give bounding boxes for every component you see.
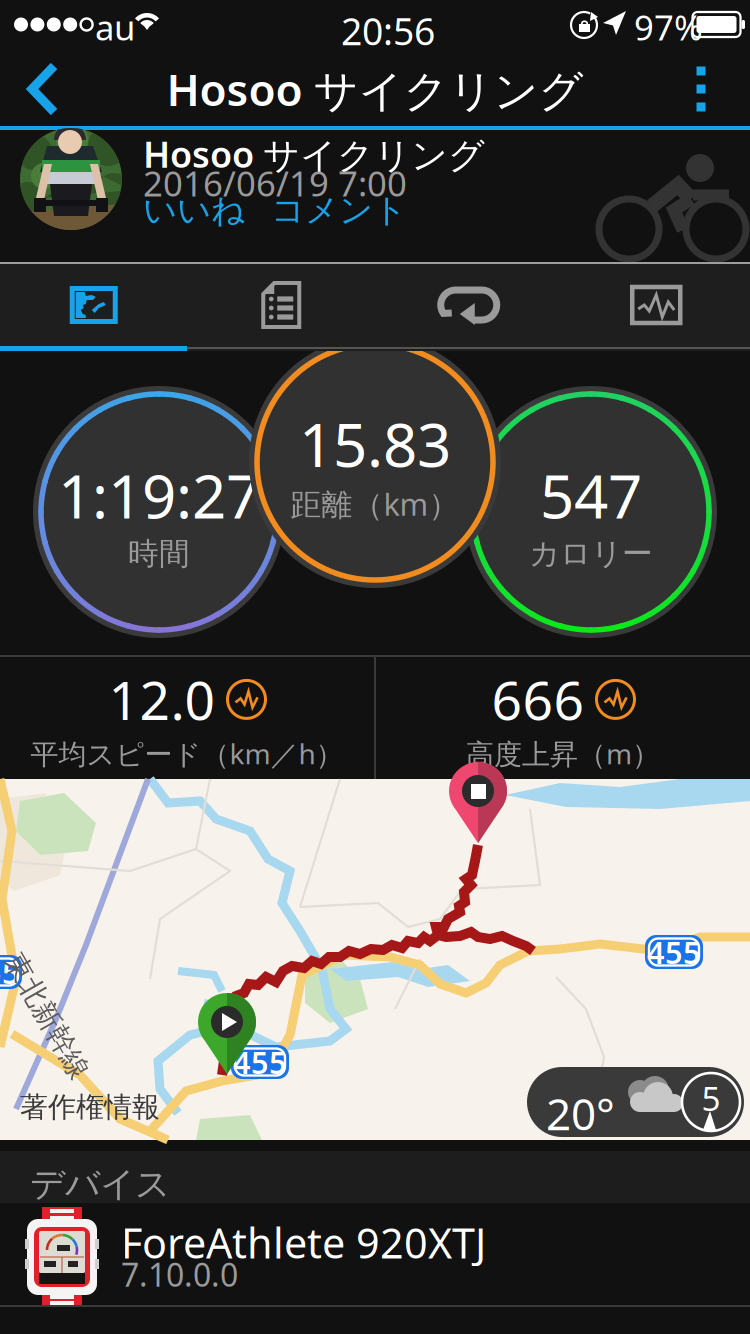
staticText: au <box>95 4 135 50</box>
staticText: 距離（km） <box>290 483 459 524</box>
staticText: 455 <box>233 1042 287 1082</box>
staticText: 5 <box>701 1076 720 1120</box>
staticText: 平均スピード（km／h） <box>30 735 343 772</box>
button[interactable]: Laps <box>375 264 562 346</box>
staticText: 547 <box>540 455 642 535</box>
button[interactable]: いいね <box>143 190 245 231</box>
staticText: 7.10.0.0 <box>121 1253 238 1295</box>
staticText: カロリー <box>529 535 653 573</box>
button[interactable]: ForeAthlete 920XTJ <box>0 1203 750 1305</box>
button[interactable]: Charts <box>562 264 750 346</box>
staticText: コメント <box>271 190 407 231</box>
staticText: 20° <box>546 1084 615 1142</box>
staticText: 455 <box>0 952 20 992</box>
staticText: ForeAthlete 920XTJ <box>121 1215 486 1270</box>
staticText: 高度上昇（m） <box>466 735 660 772</box>
staticText: 97% <box>634 4 703 50</box>
staticText: 666 <box>491 664 584 735</box>
staticText: 20:56 <box>341 6 435 56</box>
button[interactable]: Back <box>0 50 86 128</box>
staticText: いいね <box>143 190 245 231</box>
button[interactable]: コメント <box>271 190 407 231</box>
staticText: デバイス <box>30 1163 170 1206</box>
staticText: Hosoo サイクリング <box>143 130 485 178</box>
staticText: 455 <box>647 932 701 972</box>
staticText: 15.83 <box>299 404 451 483</box>
button[interactable]: Details <box>187 264 375 346</box>
staticText: 1:19:27 <box>58 455 260 535</box>
staticText: 著作権情報 <box>20 1090 160 1124</box>
staticText: 東北新幹線 <box>0 999 117 1033</box>
button[interactable]: More options <box>666 50 736 128</box>
staticText: Hosoo サイクリング <box>166 60 583 118</box>
staticText: 12.0 <box>108 664 215 735</box>
staticText: 2016/06/19 7:00 <box>143 160 407 206</box>
staticText: 時間 <box>128 535 190 573</box>
button[interactable]: Map <box>0 264 187 346</box>
